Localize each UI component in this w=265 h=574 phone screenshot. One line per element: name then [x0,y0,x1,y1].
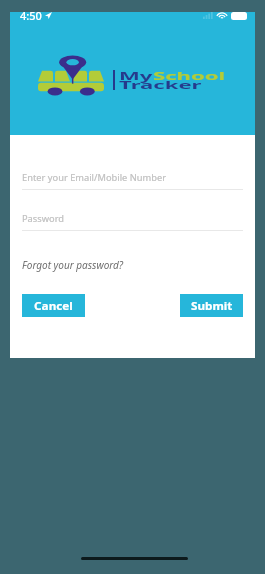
staticText: Enter your Email/Mobile Number [22,171,167,184]
button[interactable]: Submit [180,294,243,317]
button[interactable]: Cancel [22,294,85,317]
staticText: My [119,68,153,84]
button[interactable]: Forgot your password? [22,258,124,272]
staticText: Forgot your password? [22,258,124,272]
staticText: Password [22,212,65,225]
staticText: School [153,68,226,84]
staticText: Tracker [119,77,202,93]
staticText: 4:50 [20,8,42,23]
staticText: Cancel [34,299,74,313]
staticText: Submit [191,299,233,313]
